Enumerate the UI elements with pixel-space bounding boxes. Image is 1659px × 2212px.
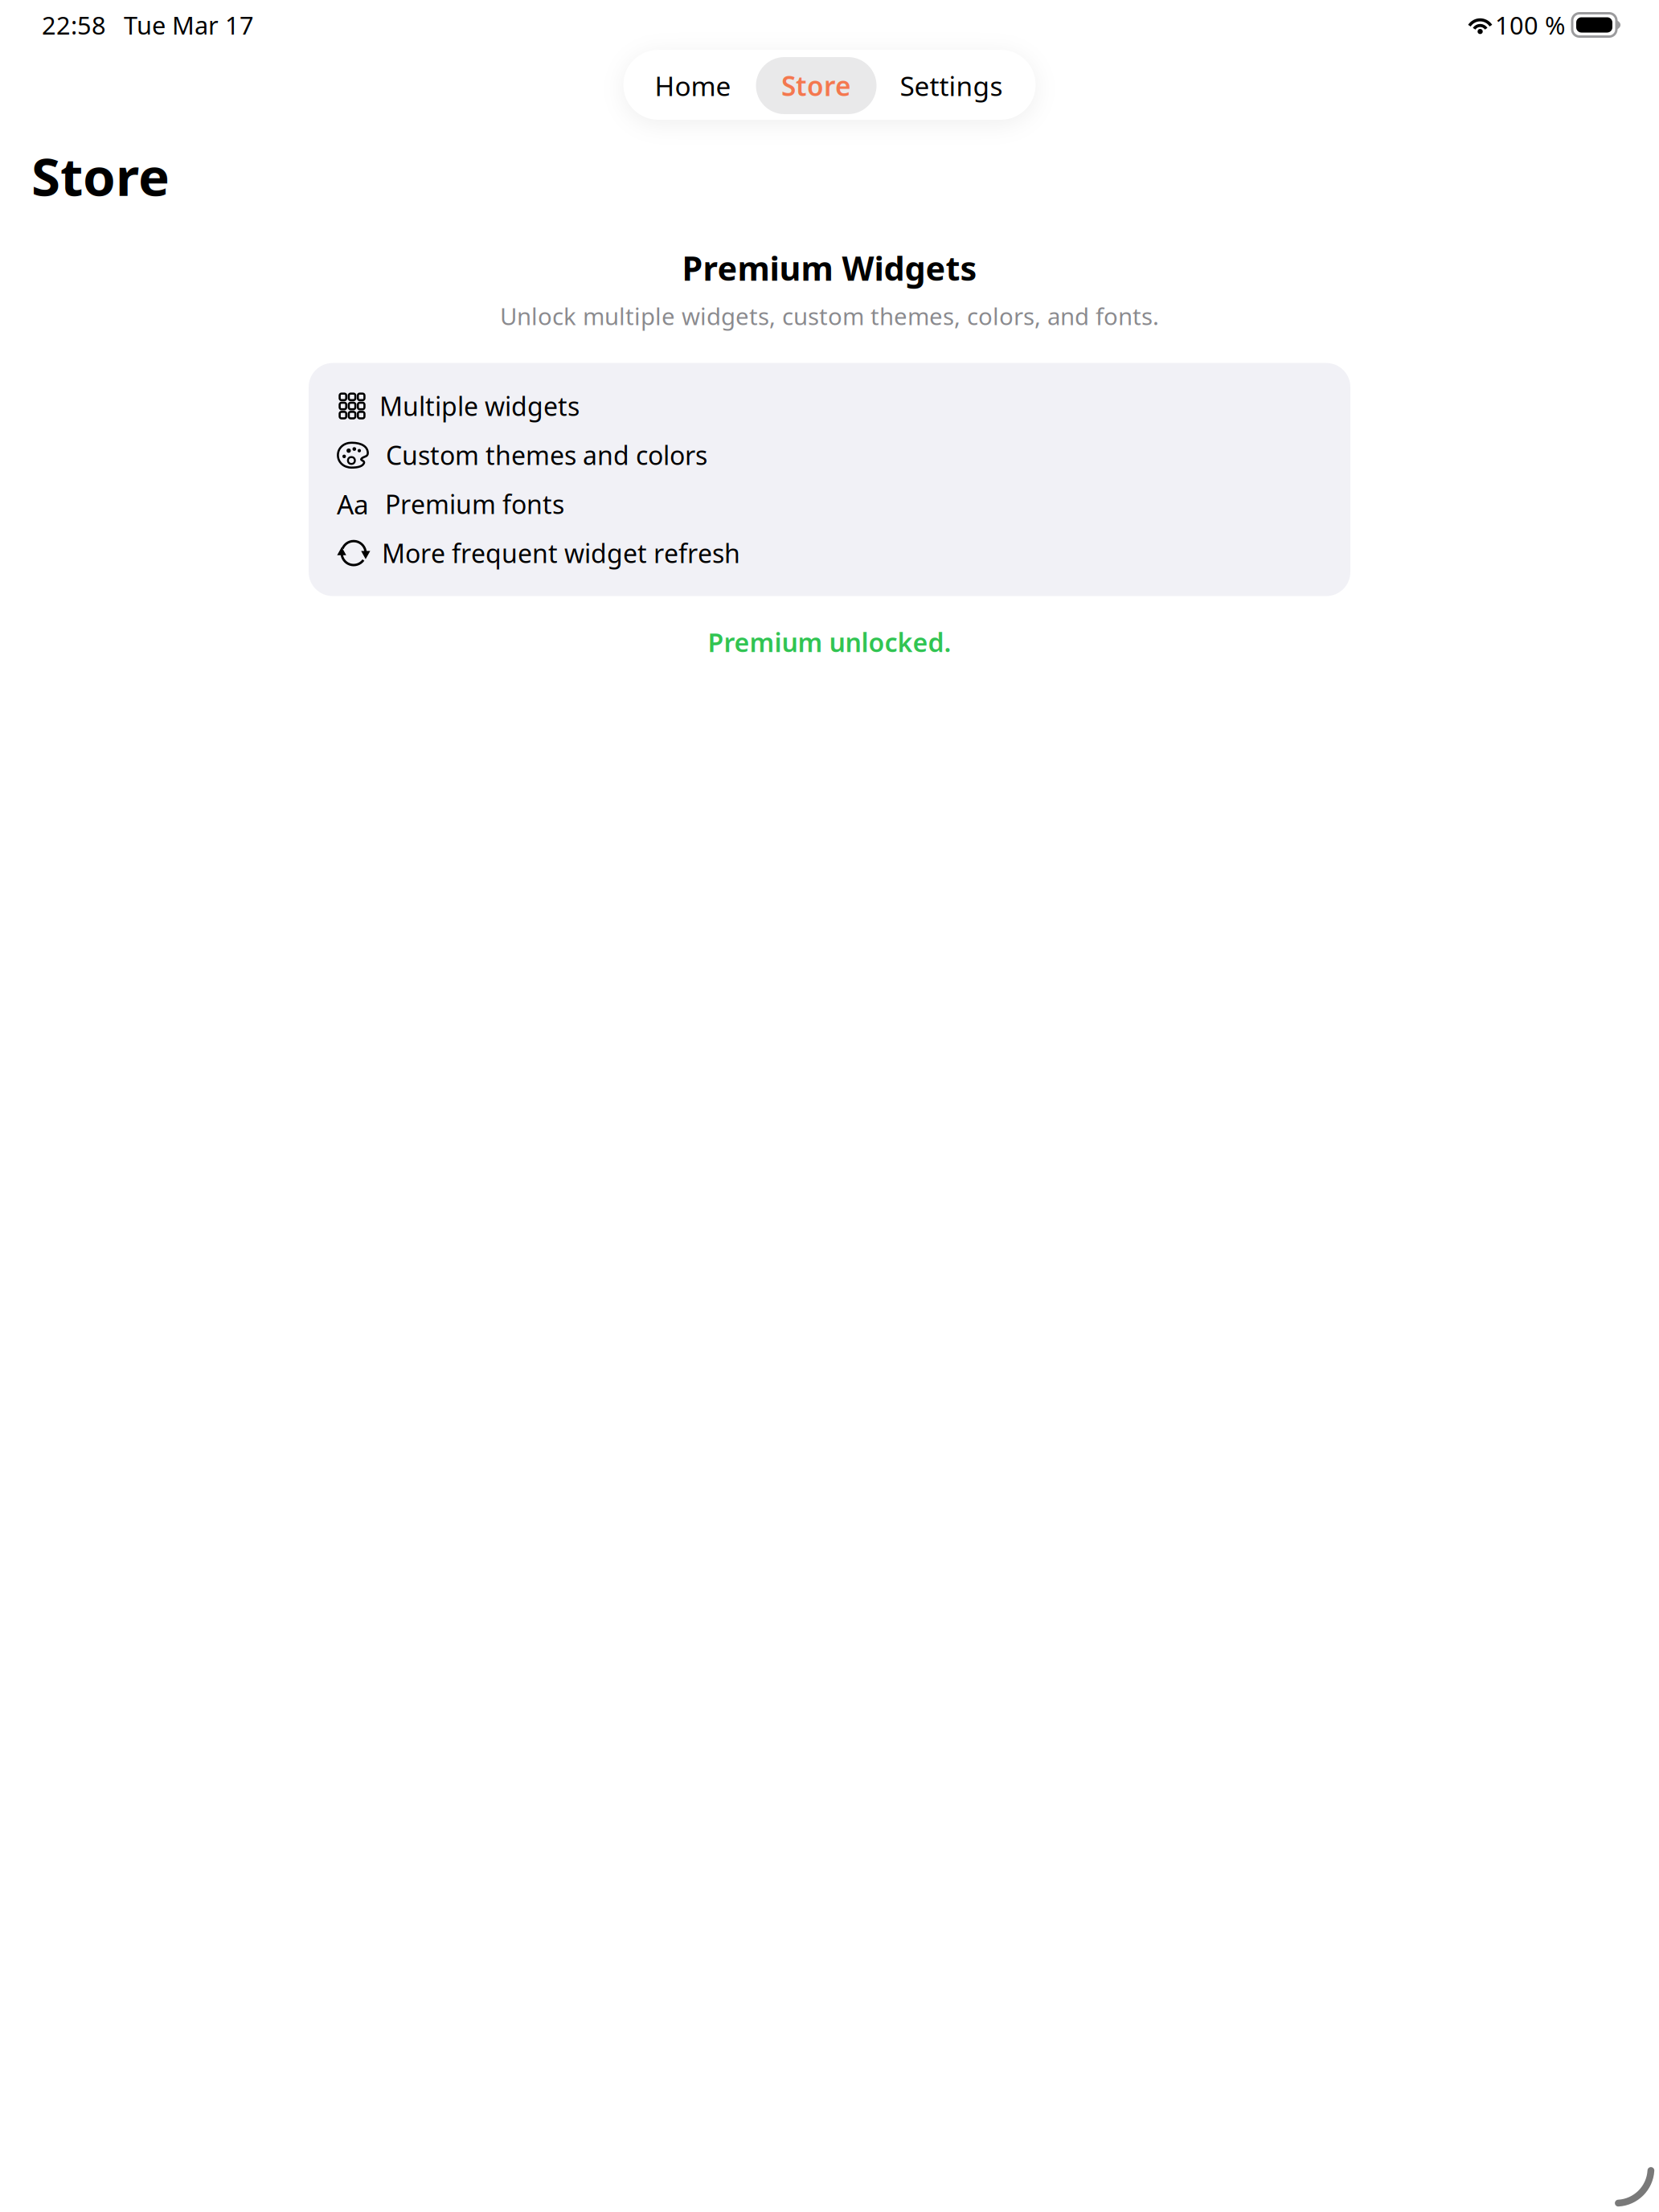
staticText: Settings <box>900 68 1003 103</box>
staticText: Store <box>781 68 851 103</box>
staticText: 22:58 <box>42 9 106 41</box>
button[interactable]: Store <box>756 57 877 114</box>
staticText: Premium unlocked. <box>708 625 951 659</box>
staticText: Premium fonts <box>385 487 564 521</box>
staticText: 100 % <box>1495 9 1565 41</box>
button[interactable]: Resize window <box>1614 2166 1659 2211</box>
button[interactable]: Settings <box>877 57 1036 115</box>
staticText: Premium Widgets <box>682 246 977 290</box>
staticText: More frequent widget refresh <box>382 536 740 570</box>
staticText: Unlock multiple widgets, custom themes, … <box>500 300 1159 332</box>
staticText: Multiple widgets <box>379 389 580 423</box>
staticText: Custom themes and colors <box>386 438 707 472</box>
staticText: Store <box>31 141 170 210</box>
staticText: Home <box>655 68 731 103</box>
button[interactable]: Home <box>623 57 756 115</box>
staticText: Aa <box>337 486 369 522</box>
staticText: Tue Mar 17 <box>124 9 254 41</box>
